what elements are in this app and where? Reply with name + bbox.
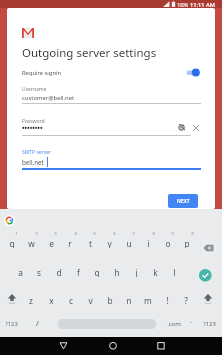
button[interactable] — [199, 269, 212, 282]
staticText: d — [56, 267, 62, 277]
staticText: f — [77, 267, 80, 277]
button[interactable]: Require signin — [22, 69, 201, 77]
button[interactable]: h — [108, 267, 126, 277]
staticText: h — [114, 267, 120, 277]
staticText: 6 — [113, 231, 116, 236]
staticText: bell.net — [22, 158, 44, 166]
staticText: 5 — [93, 231, 96, 236]
button[interactable] — [192, 124, 200, 132]
staticText: Outgoing server settings — [22, 45, 157, 61]
button[interactable]: NEXT — [168, 194, 198, 208]
button[interactable]: y — [100, 238, 118, 248]
button[interactable]: b — [101, 295, 119, 305]
staticText: customer@bell.net — [22, 94, 75, 102]
staticText: · — [190, 318, 192, 328]
staticText: Require signin — [22, 69, 62, 77]
button[interactable]: e — [42, 238, 60, 248]
button[interactable]: p — [178, 238, 196, 248]
button[interactable]: v — [81, 295, 99, 305]
button[interactable]: i — [139, 238, 157, 248]
staticText: •••••••• — [22, 124, 43, 133]
button[interactable]: ! — [158, 295, 176, 305]
button[interactable] — [7, 294, 17, 304]
staticText: e — [49, 238, 54, 248]
staticText: 3 — [54, 231, 57, 236]
button[interactable] — [186, 68, 205, 77]
staticText: p — [184, 238, 190, 248]
staticText: .com — [167, 320, 181, 328]
button[interactable]: ?123 — [200, 319, 218, 329]
staticText: a — [18, 267, 23, 277]
button[interactable]: g — [88, 267, 106, 277]
staticText: Username — [22, 86, 47, 93]
staticText: u — [126, 238, 132, 248]
button[interactable]: ? — [177, 295, 195, 305]
staticText: z — [29, 295, 33, 305]
button[interactable]: s — [30, 267, 48, 277]
button[interactable]: a — [11, 267, 29, 277]
staticText: g — [94, 267, 100, 277]
staticText: 2 — [35, 231, 38, 236]
staticText: Password — [22, 118, 45, 125]
button[interactable]: j — [127, 267, 145, 277]
button[interactable]: w — [22, 238, 40, 248]
staticText: n — [126, 295, 132, 305]
staticText: s — [37, 267, 41, 277]
staticText: b — [107, 295, 113, 305]
staticText: o — [165, 238, 171, 248]
staticText: m — [144, 295, 152, 305]
staticText: 11:11 AM — [190, 1, 215, 9]
staticText: 0 — [191, 231, 194, 236]
staticText: j — [135, 267, 138, 277]
staticText: q — [9, 238, 15, 248]
button[interactable]: c — [62, 295, 80, 305]
staticText: k — [153, 267, 158, 277]
staticText: 8 — [152, 231, 155, 236]
button[interactable] — [203, 244, 214, 252]
staticText: ?123 — [5, 320, 18, 328]
staticText: w — [28, 238, 35, 248]
button[interactable] — [177, 123, 186, 132]
staticText: ?123 — [203, 320, 216, 328]
button[interactable]: / — [28, 318, 46, 328]
button[interactable]: o — [159, 238, 177, 248]
staticText: 9 — [171, 231, 174, 236]
staticText: SMTP server — [22, 149, 52, 156]
staticText: 100% — [177, 2, 189, 8]
staticText: t — [89, 238, 92, 248]
button[interactable]: f — [69, 267, 87, 277]
staticText: ! — [166, 295, 169, 305]
button[interactable]: x — [42, 295, 60, 305]
button[interactable] — [4, 215, 15, 226]
button[interactable]: r — [61, 238, 79, 248]
staticText: NEXT — [177, 198, 190, 205]
button[interactable] — [203, 294, 213, 304]
button[interactable]: u — [120, 238, 138, 248]
button[interactable]: .com — [165, 319, 183, 329]
button[interactable]: · — [182, 318, 200, 328]
button[interactable]: k — [146, 267, 164, 277]
staticText: 4 — [74, 231, 77, 236]
button[interactable]: t — [81, 238, 99, 248]
staticText: x — [49, 295, 54, 305]
staticText: 1 — [15, 231, 18, 236]
staticText: c — [69, 295, 73, 305]
button[interactable]: d — [50, 267, 68, 277]
button[interactable]: n — [120, 295, 138, 305]
button[interactable]: m — [139, 295, 157, 305]
button[interactable]: z — [22, 295, 40, 305]
staticText: v — [88, 295, 93, 305]
staticText: / — [36, 318, 39, 328]
staticText: i — [147, 238, 150, 248]
staticText: l — [173, 267, 176, 277]
staticText: 7 — [132, 231, 135, 236]
button[interactable]: q — [3, 238, 21, 248]
staticText: y — [107, 238, 112, 248]
button[interactable]: ?123 — [2, 319, 20, 329]
staticText: ? — [184, 295, 188, 305]
button[interactable]: l — [165, 267, 183, 277]
staticText: r — [68, 238, 72, 248]
